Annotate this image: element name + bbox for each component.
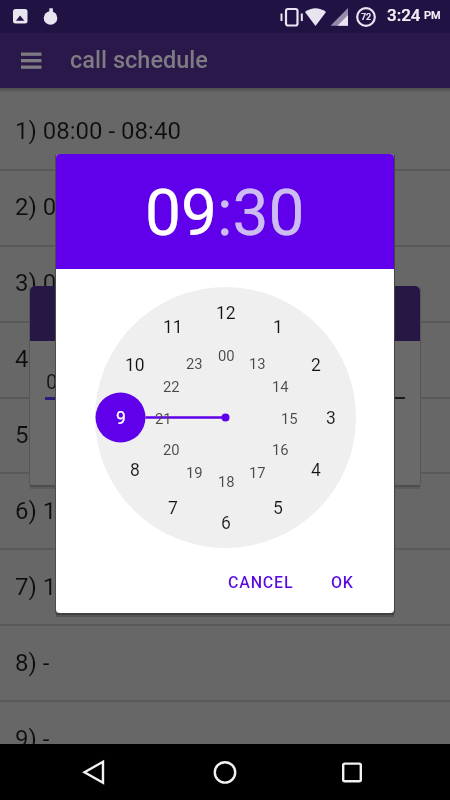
staticText: 6 [221, 513, 231, 534]
staticText: 09:30 [145, 176, 305, 251]
staticText: 13 [249, 355, 266, 372]
staticText: 3:24 [387, 5, 421, 25]
staticText: 4) 10:30 - 11:10 [15, 345, 181, 373]
staticText: 3 [326, 408, 336, 429]
staticText: 3) 09:40 - 10:20 [15, 269, 181, 297]
staticText: 1) 08:00 - 08:40 [15, 117, 181, 145]
button[interactable]: 2) 08:50 - 09:30 [0, 169, 450, 245]
staticText: 19 [186, 464, 203, 481]
staticText: 2) 08:50 - 09:30 [15, 193, 181, 221]
button[interactable]: OK [318, 565, 366, 599]
button[interactable]: 4) 10:30 - 11:10 [0, 321, 450, 397]
staticText: call schedule [70, 46, 208, 74]
staticText: 10 [125, 355, 145, 376]
button[interactable]: 3) 09:40 - 10:20 [0, 245, 450, 321]
staticText: 8 [130, 460, 140, 481]
staticText: 23 [186, 355, 203, 372]
button[interactable]: 9) - [0, 701, 450, 777]
staticText: 12 [216, 303, 236, 324]
staticText: 9 [116, 408, 126, 429]
staticText: 21 [155, 410, 172, 427]
button[interactable] [334, 754, 370, 790]
staticText: 6) 12:10 - 12:50 [15, 497, 181, 525]
staticText: 1 [273, 317, 283, 338]
button[interactable] [14, 47, 50, 75]
staticText: 5) 11:20 - 12:00 [15, 421, 181, 449]
staticText: PM [424, 9, 441, 22]
button[interactable]: 6) 12:10 - 12:50 [0, 473, 450, 549]
button[interactable] [207, 754, 243, 790]
staticText: 18 [218, 473, 235, 490]
staticText: 8) - [15, 649, 50, 677]
staticText: 14 [272, 378, 289, 395]
staticText: 11 [163, 317, 183, 338]
button[interactable] [75, 754, 111, 790]
staticText: 9) - [15, 725, 50, 753]
button[interactable]: CANCEL [225, 565, 297, 599]
button[interactable]: 7) 13:00 - 13:40 [0, 549, 450, 625]
staticText: 17 [249, 464, 266, 481]
staticText: 16 [272, 441, 289, 458]
staticText: 72 [361, 12, 372, 23]
staticText: 5 [273, 498, 283, 519]
staticText: 15 [281, 410, 298, 427]
staticText: 7) 13:00 - 13:40 [15, 573, 181, 601]
staticText: 22 [163, 378, 180, 395]
staticText: 7 [168, 498, 178, 519]
button[interactable]: 1) 08:00 - 08:40 [0, 93, 450, 169]
staticText: 00 [218, 347, 235, 364]
staticText: 20 [163, 441, 180, 458]
staticText: 4 [311, 460, 321, 481]
staticText: CANCEL [228, 573, 294, 592]
staticText: 2 [311, 355, 321, 376]
button[interactable]: 8) - [0, 625, 450, 701]
staticText: 0 [46, 370, 58, 393]
button[interactable]: 5) 11:20 - 12:00 [0, 397, 450, 473]
staticText: OK [331, 573, 354, 592]
